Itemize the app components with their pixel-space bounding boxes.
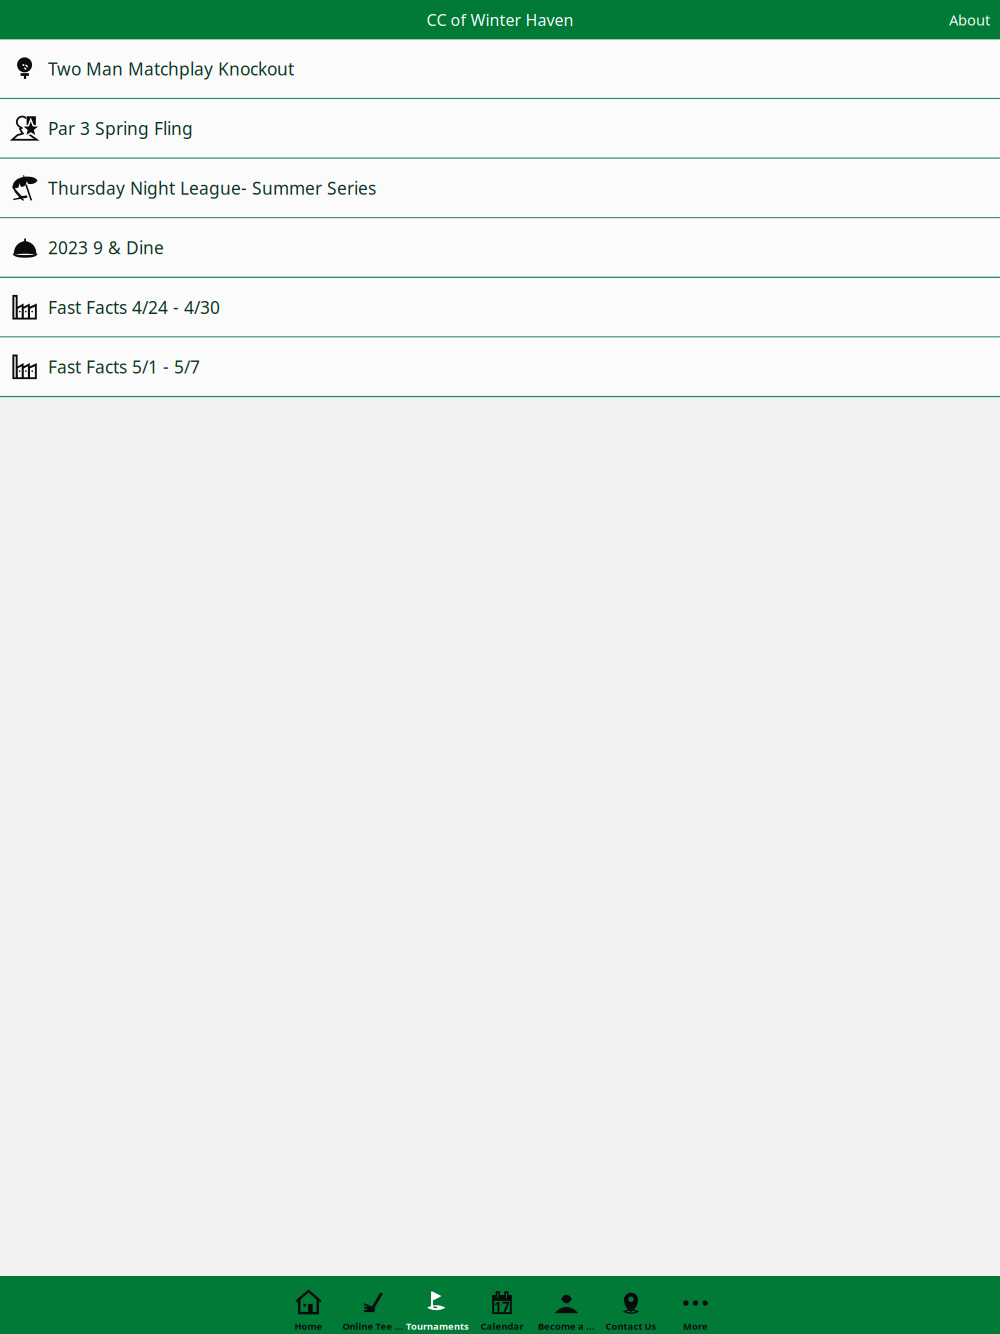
staticText: CC of Winter Haven — [426, 9, 573, 30]
button[interactable]: Thursday Night League- Summer Series — [0, 159, 1000, 218]
staticText: 17 — [494, 1298, 510, 1315]
staticText: Contact Us — [605, 1320, 656, 1332]
staticText: 2023 9 & Dine — [48, 236, 164, 259]
staticText: Online Tee ... — [342, 1320, 403, 1332]
button[interactable]: Par 3 Spring Fling — [0, 99, 1000, 159]
button[interactable]: 2023 9 & Dine — [0, 218, 1000, 278]
staticText: More — [683, 1320, 708, 1332]
staticText: Become a ... — [538, 1320, 595, 1332]
button[interactable]: Become a ... — [534, 1276, 599, 1334]
button[interactable]: Tournaments — [405, 1276, 470, 1334]
button[interactable]: Home — [276, 1276, 341, 1334]
button[interactable]: Fast Facts 5/1 - 5/7 — [0, 338, 1000, 397]
staticText: Fast Facts 5/1 - 5/7 — [48, 355, 200, 378]
button[interactable]: Fast Facts 4/24 - 4/30 — [0, 278, 1000, 338]
button[interactable]: 17 — [470, 1276, 534, 1334]
staticText: Calendar — [480, 1320, 523, 1332]
button[interactable]: Contact Us — [599, 1276, 663, 1334]
staticText: Two Man Matchplay Knockout — [48, 57, 294, 80]
staticText: Fast Facts 4/24 - 4/30 — [48, 296, 220, 319]
button[interactable]: Two Man Matchplay Knockout — [0, 40, 1000, 99]
button[interactable]: More — [663, 1276, 728, 1334]
staticText: Par 3 Spring Fling — [48, 117, 193, 140]
staticText: Thursday Night League- Summer Series — [48, 176, 376, 199]
staticText: Home — [294, 1320, 322, 1332]
staticText: About — [949, 10, 990, 30]
button[interactable]: About — [949, 2, 1000, 38]
staticText: Tournaments — [406, 1320, 469, 1332]
button[interactable]: Online Tee ... — [341, 1276, 405, 1334]
